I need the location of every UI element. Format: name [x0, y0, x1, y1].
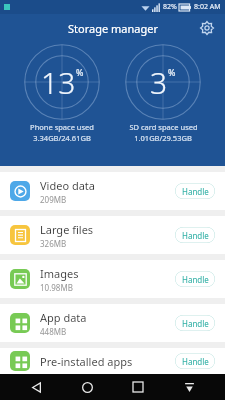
- staticText: 448MB: [40, 326, 67, 337]
- staticText: App data: [40, 310, 87, 325]
- staticText: Large files: [40, 222, 94, 237]
- staticText: 82%: [163, 2, 177, 12]
- staticText: Handle: [182, 230, 209, 241]
- button[interactable]: Home: [72, 374, 102, 400]
- button[interactable]: Handle: [175, 271, 215, 287]
- button[interactable]: Back: [21, 374, 51, 400]
- staticText: Pre-installed apps: [40, 354, 133, 369]
- staticText: 326MB: [40, 238, 67, 249]
- staticText: Phone space used: [30, 122, 94, 132]
- staticText: 3: [150, 62, 168, 103]
- staticText: 8:02 AM: [194, 2, 221, 12]
- button[interactable]: Video data: [0, 172, 225, 210]
- staticText: Video data: [40, 178, 95, 193]
- staticText: Images: [40, 266, 79, 281]
- staticText: Handle: [182, 318, 209, 329]
- button[interactable]: Handle: [175, 353, 215, 369]
- staticText: SD card space used: [129, 122, 198, 132]
- staticText: Handle: [182, 274, 209, 285]
- button[interactable]: Handle: [175, 227, 215, 243]
- staticText: %: [76, 66, 84, 78]
- button[interactable]: Images: [0, 260, 225, 298]
- staticText: Handle: [182, 186, 209, 197]
- staticText: %: [168, 66, 176, 78]
- button[interactable]: Handle: [175, 183, 215, 199]
- staticText: Handle: [182, 356, 209, 367]
- staticText: 3.34GB/24.61GB: [33, 133, 91, 143]
- button[interactable]: Large files: [0, 216, 225, 254]
- button[interactable]: Pre-installed apps: [0, 348, 225, 374]
- staticText: 13: [41, 62, 76, 103]
- staticText: 209MB: [40, 194, 67, 205]
- button[interactable]: Settings: [195, 16, 219, 40]
- button[interactable]: Hide navigation bar: [174, 374, 204, 400]
- staticText: 10.98MB: [40, 282, 73, 293]
- button[interactable]: Recent apps: [123, 374, 153, 400]
- staticText: Storage manager: [68, 21, 158, 36]
- button[interactable]: App data: [0, 304, 225, 342]
- button[interactable]: Handle: [175, 315, 215, 331]
- staticText: 1.01GB/29.53GB: [134, 133, 192, 143]
